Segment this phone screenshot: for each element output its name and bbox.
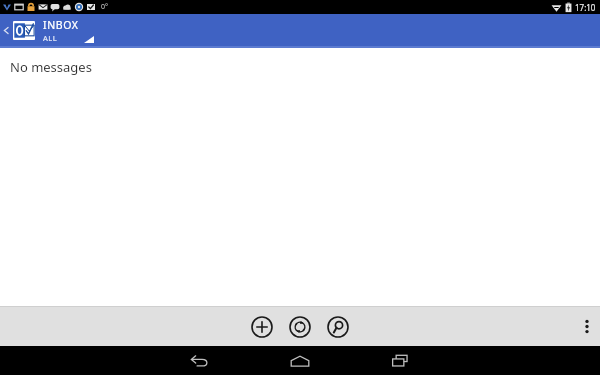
button[interactable]: More options xyxy=(574,307,600,346)
button[interactable]: Home xyxy=(250,346,350,375)
staticText: INBOX xyxy=(43,18,79,32)
button[interactable]: Compose xyxy=(249,314,275,340)
staticText: No messages xyxy=(10,58,92,76)
staticText: ALL xyxy=(43,33,58,43)
button[interactable]: Search xyxy=(325,314,351,340)
button[interactable]: Back xyxy=(150,346,250,375)
staticText: 17:10 xyxy=(575,2,596,13)
button[interactable]: Back xyxy=(0,14,13,46)
button[interactable]: INBOX xyxy=(43,18,98,43)
button[interactable]: Outlook xyxy=(13,21,35,40)
staticText: 0° xyxy=(101,2,108,12)
button[interactable]: Recent apps xyxy=(350,346,450,375)
button[interactable]: Refresh xyxy=(287,314,313,340)
